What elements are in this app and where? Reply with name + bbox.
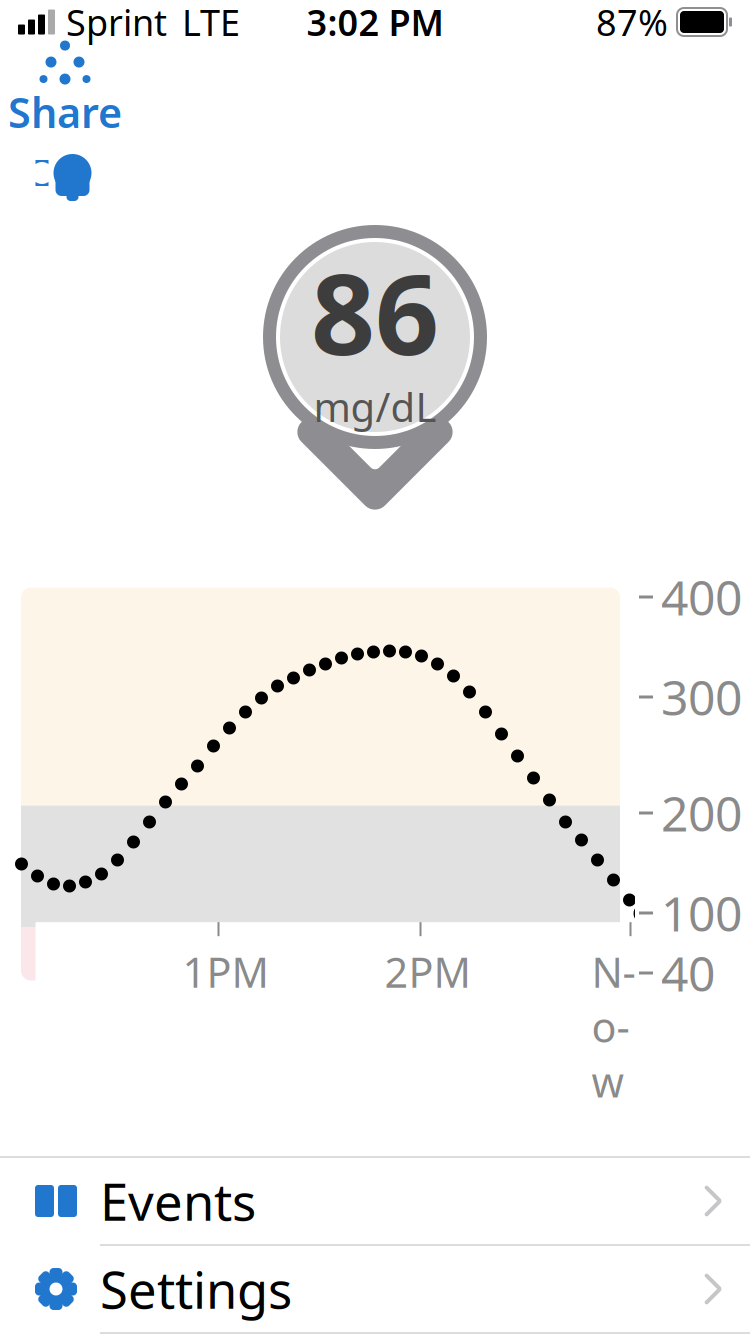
staticText: 200 [661, 781, 742, 845]
staticText: Settings [100, 1255, 292, 1323]
staticText: Share [8, 85, 122, 139]
staticText: 86 [311, 237, 439, 386]
staticText: Events [100, 1167, 256, 1235]
staticText: mg/dL [313, 380, 436, 433]
staticText: 400 [661, 565, 742, 629]
staticText: Now [591, 944, 635, 1109]
staticText: 300 [661, 665, 742, 729]
staticText: Sprint [66, 0, 167, 46]
staticText: LTE [182, 0, 240, 46]
button[interactable]: Alerts [6, 138, 124, 208]
button[interactable]: Share [6, 44, 124, 138]
staticText: 3:02 PM [306, 0, 443, 46]
button[interactable]: Settings [0, 1246, 750, 1332]
button[interactable]: Events [0, 1158, 750, 1244]
staticText: 87% [596, 0, 668, 46]
staticText: 40 [661, 941, 715, 1005]
staticText: 2PM [384, 944, 470, 999]
staticText: 1PM [182, 944, 268, 999]
staticText: 100 [661, 881, 742, 945]
